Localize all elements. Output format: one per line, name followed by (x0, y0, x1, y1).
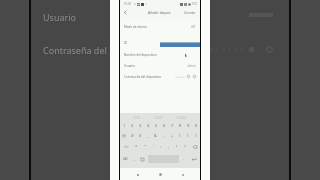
staticText: 5 (155, 123, 158, 129)
staticText: ( (179, 133, 181, 139)
button[interactable]: 1234 (132, 116, 141, 120)
staticText: $ (139, 133, 142, 139)
button[interactable]: ABC (120, 153, 131, 165)
staticText: # (131, 133, 134, 139)
button[interactable]: 8 (176, 121, 184, 131)
staticText: admin (187, 64, 196, 68)
staticText: 100 (192, 2, 197, 6)
staticText: =\< (124, 145, 129, 149)
button[interactable]: ! (173, 142, 181, 152)
staticText: / (195, 133, 197, 139)
staticText: 1 (123, 123, 126, 129)
button[interactable]: / (192, 131, 200, 141)
staticText: 123456 (176, 116, 187, 120)
staticText: 0 (195, 123, 198, 129)
staticText: ; (168, 144, 170, 150)
button[interactable]: Backspace (189, 142, 200, 152)
button[interactable]: Back (132, 169, 143, 180)
staticText: ! (176, 144, 178, 150)
button[interactable]: + (168, 131, 176, 141)
button[interactable]: 12345 (153, 116, 164, 120)
button[interactable]: Emoji (138, 153, 147, 165)
staticText: ? (184, 144, 186, 150)
button[interactable]: _ (144, 131, 152, 141)
staticText: Off (191, 25, 196, 29)
button[interactable]: =\< (120, 142, 132, 152)
staticText: Usuario (124, 64, 135, 68)
button[interactable]: " (141, 142, 149, 152)
staticText: : (160, 144, 162, 150)
button[interactable]: 123456 (175, 116, 188, 120)
button[interactable]: : (157, 142, 165, 152)
button[interactable]: Home (155, 169, 166, 180)
staticText: , (134, 156, 136, 162)
button[interactable]: 7 (168, 121, 176, 131)
button[interactable]: 0 (192, 121, 200, 131)
staticText: _ (147, 133, 149, 139)
staticText: 10:30 (124, 2, 132, 6)
button[interactable]: * (132, 142, 141, 152)
button[interactable]: Nombre del dispositivo (120, 49, 200, 60)
staticText: Guardar (184, 11, 196, 15)
button[interactable]: 1 (120, 121, 128, 131)
button[interactable]: Guardar (180, 11, 200, 15)
staticText: 2 (131, 123, 134, 129)
staticText: 9 (187, 123, 190, 129)
button[interactable]: Modo de ahorro (120, 21, 200, 32)
button[interactable]: 3 (136, 121, 144, 131)
staticText: Contraseña del dispositivo (124, 75, 162, 79)
button[interactable]: 4 (144, 121, 152, 131)
staticText: 12345 (154, 116, 163, 120)
staticText: 1234 (133, 116, 140, 120)
button[interactable]: Show password (186, 74, 191, 79)
staticText: Añadir dispos (148, 10, 171, 15)
staticText: 8 (179, 123, 182, 129)
button[interactable]: Enter (188, 153, 200, 165)
button[interactable]: ; (165, 142, 173, 152)
button[interactable]: # (128, 131, 136, 141)
staticText: @ (122, 133, 126, 139)
button[interactable]: 6 (160, 121, 168, 131)
button[interactable]: Help (192, 74, 197, 79)
staticText: " (144, 144, 146, 150)
button[interactable]: Back (121, 8, 130, 17)
staticText: Modo de ahorro (124, 25, 147, 29)
button[interactable]: ( (176, 131, 184, 141)
staticText: & (154, 133, 158, 139)
button[interactable]: $ (136, 131, 144, 141)
button[interactable]: Usuario (120, 60, 200, 71)
staticText: . (183, 156, 185, 162)
staticText: Usuario (43, 11, 76, 23)
staticText: - (163, 133, 165, 139)
staticText: Contraseña del (43, 44, 107, 56)
button[interactable]: ? (181, 142, 189, 152)
button[interactable]: 5 (152, 121, 160, 131)
button[interactable]: 2 (128, 121, 136, 131)
button[interactable]: ' (149, 142, 157, 152)
staticText: * (135, 144, 138, 150)
button[interactable]: & (152, 131, 160, 141)
button[interactable]: 9 (184, 121, 192, 131)
staticText: 7 (171, 123, 174, 129)
staticText: ' (153, 144, 154, 150)
button[interactable]: , (131, 153, 138, 165)
staticText: + (171, 133, 174, 139)
staticText: ID (124, 41, 128, 45)
staticText: 3 (139, 123, 142, 129)
staticText: Nombre del dispositivo (124, 53, 157, 57)
button[interactable]: Recent apps (177, 169, 188, 180)
staticText: ) (187, 133, 189, 139)
staticText: ABC (123, 157, 129, 161)
staticText: 4 (147, 123, 150, 129)
button[interactable]: Contraseña del dispositivo (120, 71, 200, 82)
staticText: 6 (163, 123, 166, 129)
button[interactable]: @ (120, 131, 128, 141)
button[interactable]: ) (184, 131, 192, 141)
